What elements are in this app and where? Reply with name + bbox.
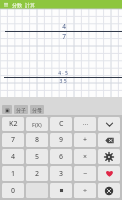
button[interactable]: 8 — [26, 133, 48, 147]
button[interactable]: + — [74, 133, 96, 147]
staticText: 6 — [59, 152, 64, 162]
button[interactable]: 3 — [50, 166, 72, 181]
staticText: F(X) — [32, 121, 42, 128]
button[interactable]: Fraction — [50, 183, 72, 198]
button[interactable]: Hide keyboard — [98, 117, 120, 131]
button[interactable]: 0 — [2, 183, 24, 198]
staticText: 0 — [11, 186, 16, 196]
staticText: 分子 — [16, 107, 26, 113]
staticText: + — [83, 135, 88, 145]
button[interactable]: Menu — [2, 1, 9, 8]
button[interactable]: Settings — [98, 149, 120, 164]
staticText: 4 · 5 — [58, 70, 68, 77]
staticText: − — [83, 169, 88, 179]
staticText: × — [83, 152, 88, 162]
button[interactable]: 4 — [2, 149, 24, 164]
staticText: ▣ — [5, 107, 10, 113]
button[interactable]: 7 — [2, 133, 24, 147]
staticText: 9 — [59, 135, 64, 145]
button[interactable]: More — [74, 117, 96, 131]
button[interactable]: 5 — [26, 149, 48, 164]
button[interactable]: 1 — [2, 166, 24, 181]
button[interactable]: ÷ — [74, 183, 96, 198]
button[interactable]: 6 — [50, 149, 72, 164]
button[interactable]: Insert fraction — [2, 105, 12, 114]
staticText: K2 — [9, 119, 18, 129]
staticText: C — [59, 119, 64, 129]
staticText: 3 5 — [59, 78, 67, 85]
button[interactable]: 分子 — [14, 105, 28, 114]
button[interactable]: × — [74, 149, 96, 164]
button[interactable]: Favorite — [98, 166, 120, 181]
staticText: 4 — [62, 22, 66, 31]
button[interactable]: 2 — [26, 166, 48, 181]
button[interactable]: Close — [98, 183, 120, 198]
staticText: 7 — [62, 32, 66, 41]
button[interactable]: 9 — [50, 133, 72, 147]
staticText: 分数 — [12, 2, 22, 8]
staticText: 8 — [35, 135, 40, 145]
button[interactable]: Backspace — [98, 133, 120, 147]
staticText: 7 — [11, 135, 16, 145]
staticText: 1 — [11, 169, 16, 179]
staticText: 分母 — [32, 107, 42, 113]
staticText: 2 — [35, 169, 40, 179]
button[interactable]: − — [74, 166, 96, 181]
staticText: 計算 — [25, 2, 35, 8]
button[interactable]: 分母 — [30, 105, 44, 114]
button[interactable]: F(X) — [26, 117, 48, 131]
button[interactable]: K2 — [2, 117, 24, 131]
staticText: 4 — [11, 152, 16, 162]
staticText: 3 — [59, 169, 64, 179]
staticText: 5 — [35, 152, 40, 162]
button[interactable]: C — [50, 117, 72, 131]
staticText: ÷ — [83, 186, 88, 196]
